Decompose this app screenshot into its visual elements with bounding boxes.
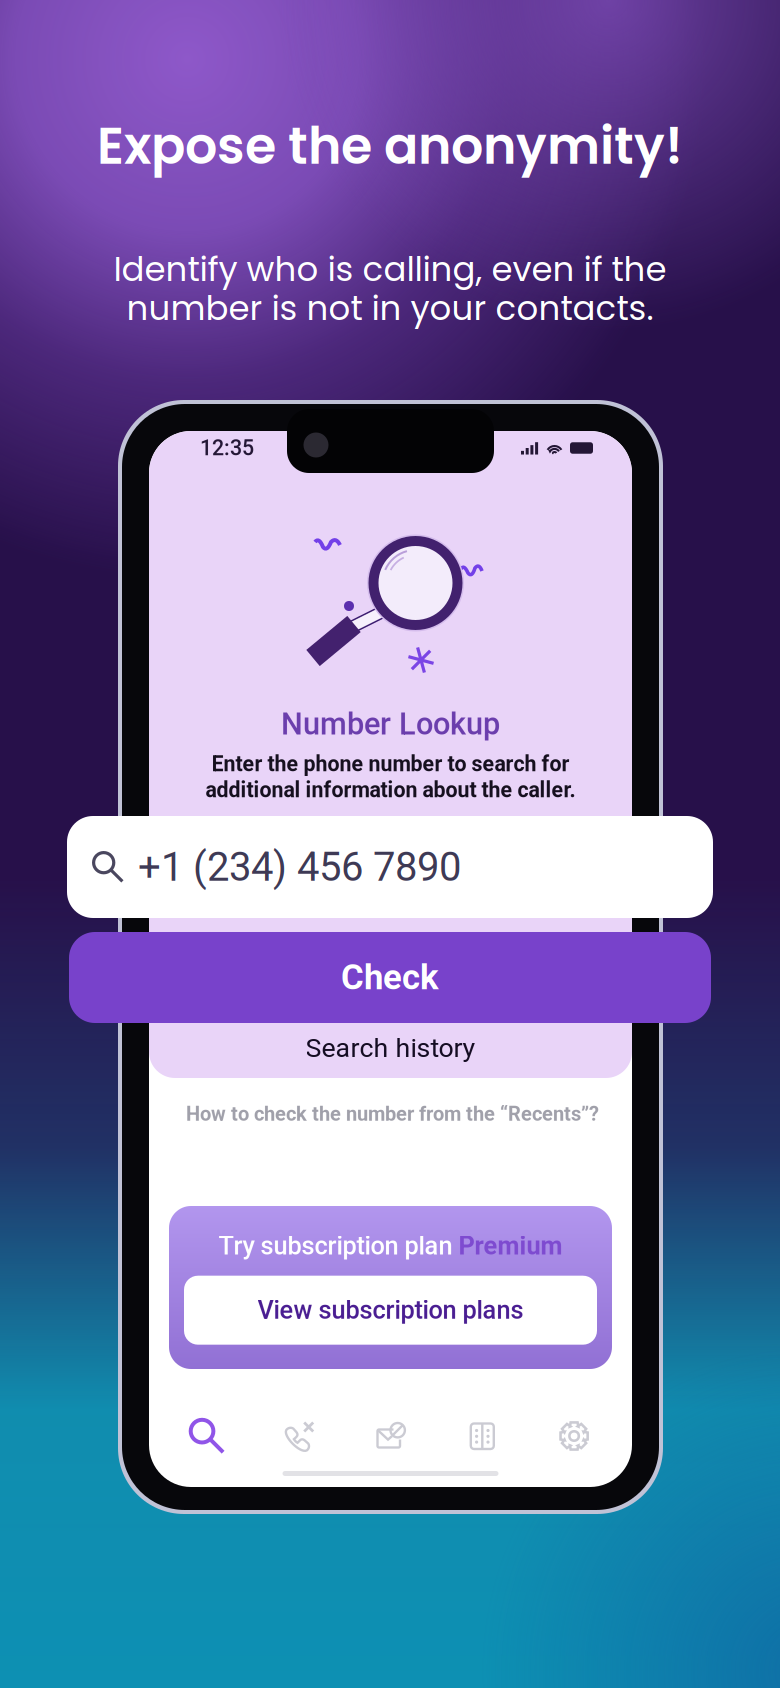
staticText: number is not in your contacts. (126, 284, 653, 332)
staticText: Number Lookup (281, 706, 500, 742)
staticText: Try subscription plan (218, 1231, 458, 1261)
button[interactable]: Keypad (436, 1419, 528, 1453)
staticText: View subscription plans (257, 1295, 523, 1325)
button[interactable]: Blocked calls (253, 1419, 345, 1453)
staticText: additional information about the caller. (205, 777, 575, 802)
button[interactable]: View subscription plans (184, 1276, 597, 1345)
button[interactable]: Blocked messages (345, 1419, 436, 1453)
staticText: Search history (305, 1032, 475, 1064)
staticText: Premium (458, 1231, 562, 1261)
button[interactable]: Search (161, 1418, 253, 1454)
staticText: Check (341, 957, 439, 998)
button[interactable]: Check (69, 932, 711, 1023)
staticText: Expose the anonymity! (97, 110, 683, 181)
staticText: How to check the number from the “Recent… (186, 1102, 599, 1126)
staticText: Enter the phone number to search for (211, 751, 569, 776)
staticText: Identify who is calling, even if the (113, 245, 666, 293)
button[interactable]: Search history (149, 1028, 632, 1068)
button[interactable]: Settings (528, 1419, 620, 1453)
staticText: +1 (234) 456 7890 (138, 844, 461, 890)
staticText: 12:35 (200, 435, 254, 460)
